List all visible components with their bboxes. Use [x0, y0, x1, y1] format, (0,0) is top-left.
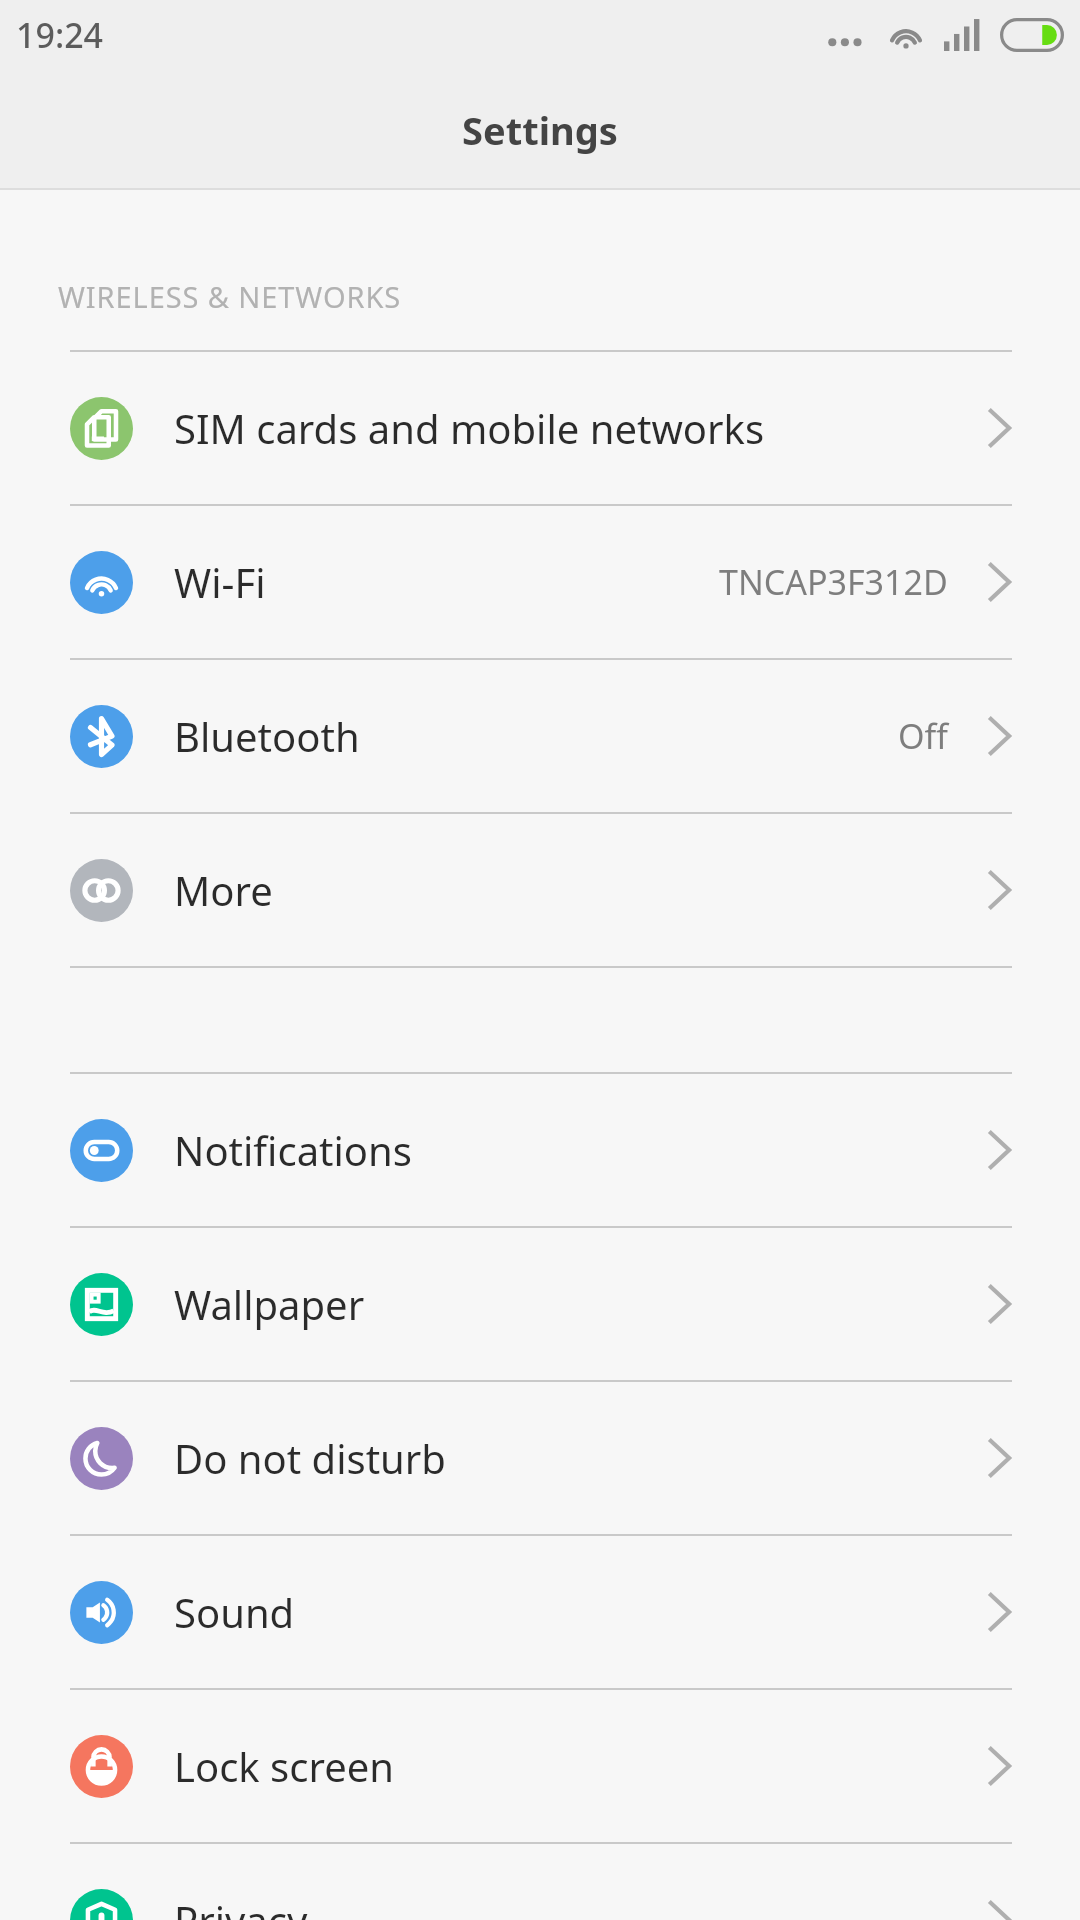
button[interactable]: Privacy — [0, 1844, 1080, 1920]
staticText: More — [174, 863, 988, 917]
button[interactable]: Bluetooth — [0, 660, 1080, 812]
button[interactable]: Sound — [0, 1536, 1080, 1688]
staticText: Notifications — [174, 1123, 988, 1177]
staticText: Bluetooth — [174, 709, 898, 763]
staticText: TNCAP3F312D — [719, 559, 948, 605]
button[interactable]: Notifications — [0, 1074, 1080, 1226]
staticText: WIRELESS & NETWORKS — [58, 277, 402, 316]
button[interactable]: Do not disturb — [0, 1382, 1080, 1534]
button[interactable]: SIM cards and mobile networks — [0, 352, 1080, 504]
staticText: Wi-Fi — [174, 555, 719, 609]
staticText: Settings — [462, 104, 618, 156]
staticText: Do not disturb — [174, 1431, 988, 1485]
staticText: Lock screen — [174, 1739, 988, 1793]
staticText: 19:24 — [16, 12, 104, 58]
staticText: Sound — [174, 1585, 988, 1639]
staticText: Wallpaper — [174, 1277, 988, 1331]
button[interactable]: Wi-Fi — [0, 506, 1080, 658]
button[interactable]: Lock screen — [0, 1690, 1080, 1842]
staticText: SIM cards and mobile networks — [174, 401, 988, 455]
staticText: Off — [898, 713, 948, 759]
button[interactable]: Wallpaper — [0, 1228, 1080, 1380]
button[interactable]: More — [0, 814, 1080, 966]
staticText: Privacy — [174, 1893, 988, 1920]
